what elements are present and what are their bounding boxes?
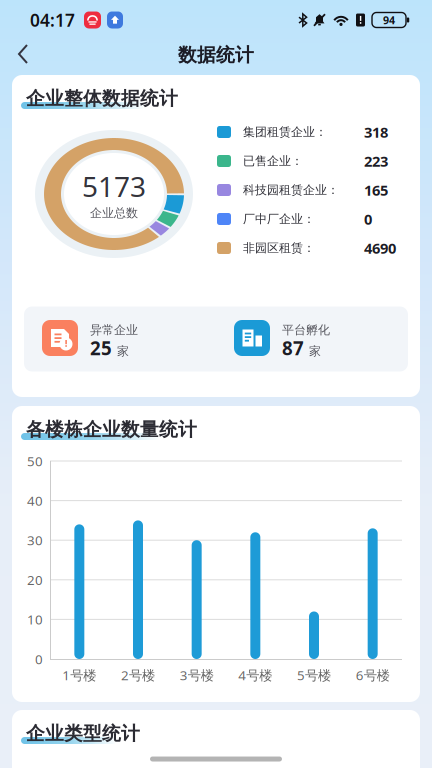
staticText: 家 [309, 344, 321, 359]
staticText: 3号楼 [180, 666, 214, 684]
staticText: 科技园租赁企业： [243, 183, 339, 197]
staticText: 223 [364, 151, 388, 171]
staticText: 50 [27, 452, 43, 470]
staticText: 集团租赁企业： [243, 125, 327, 139]
staticText: 异常企业 [90, 323, 138, 337]
staticText: 各楼栋企业数量统计 [26, 418, 197, 441]
staticText: 企业整体数据统计 [26, 87, 178, 110]
staticText: 2号楼 [121, 666, 155, 684]
staticText: 25 [90, 336, 112, 360]
staticText: 165 [364, 180, 388, 200]
staticText: 40 [27, 492, 43, 509]
staticText: 5号楼 [297, 666, 331, 684]
staticText: 5173 [82, 167, 146, 205]
staticText: 数据统计 [178, 43, 254, 66]
staticText: 家 [117, 344, 129, 359]
staticText: 20 [27, 571, 43, 589]
staticText: 平台孵化 [282, 323, 330, 337]
staticText: 已售企业： [243, 154, 303, 168]
staticText: 10 [27, 610, 43, 628]
staticText: 企业总数 [90, 206, 138, 220]
staticText: 04:17 [30, 8, 75, 31]
button[interactable]: Back [10, 37, 54, 73]
staticText: 4号楼 [238, 666, 272, 684]
staticText: 94 [383, 13, 395, 27]
staticText: 1号楼 [62, 666, 96, 684]
staticText: 0 [35, 650, 43, 668]
staticText: 87 [282, 336, 304, 360]
staticText: 企业类型统计 [26, 722, 140, 745]
staticText: 4690 [364, 238, 396, 258]
staticText: 6号楼 [356, 666, 390, 684]
staticText: 30 [27, 531, 43, 549]
staticText: 非园区租赁： [243, 241, 315, 255]
staticText: 0 [364, 209, 372, 229]
staticText: 318 [364, 122, 388, 142]
staticText: 厂中厂企业： [243, 212, 315, 226]
